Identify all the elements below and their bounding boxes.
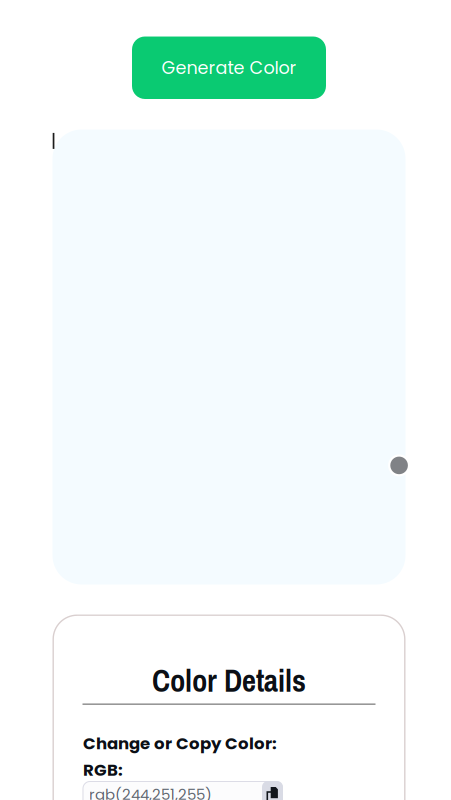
staticText: Color Details [152,660,306,701]
staticText: rgb(244,251,255) [89,784,212,800]
staticText: RGB: [83,758,123,782]
staticText: Generate Color [161,55,296,80]
button[interactable]: Copy colour value [262,781,283,800]
staticText: Change or Copy Color: [83,732,277,755]
button[interactable]: Generate Color [132,36,326,99]
